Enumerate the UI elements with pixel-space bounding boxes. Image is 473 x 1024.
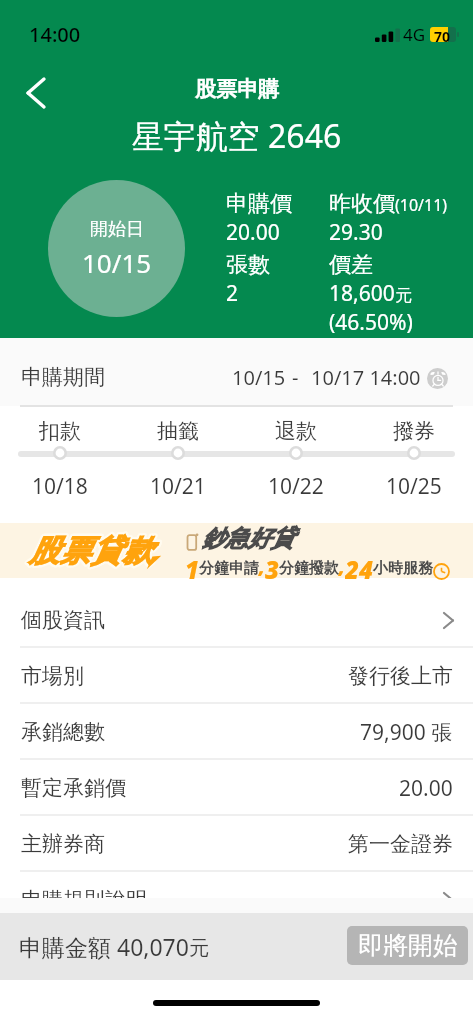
staticText: 20.00 [399, 774, 453, 803]
staticText: 79,900 張 [360, 718, 453, 747]
staticText: 股票貸款 [29, 532, 154, 570]
staticText: 10/17 14:00 [311, 364, 421, 391]
staticText: 張數 [226, 251, 270, 279]
staticText: 昨收價 [329, 190, 395, 218]
staticText: 小時服務 [373, 559, 433, 578]
button[interactable]: 市場別 [0, 648, 473, 704]
staticText: 申購規則說明 [21, 887, 147, 913]
staticText: 元 [395, 285, 412, 306]
staticText: 70 [434, 27, 451, 42]
staticText: 退款 [275, 418, 317, 444]
staticText: 18,600 [329, 279, 395, 308]
staticText: 發行後上市 [348, 663, 453, 689]
staticText: 鈔急好貸 [202, 524, 294, 553]
staticText: (10/11) [395, 194, 448, 216]
staticText: 14:00 [29, 21, 81, 48]
staticText: 2 [226, 279, 239, 308]
staticText: 市場別 [21, 663, 84, 689]
staticText: 29.30 [329, 218, 383, 247]
staticText: 24 [345, 553, 373, 579]
staticText: 10/15 [82, 245, 152, 280]
staticText: 承銷總數 [21, 719, 105, 745]
staticText: 申購價 [226, 190, 292, 218]
button[interactable]: Set reminder [427, 368, 448, 389]
staticText: 價差 [329, 251, 373, 279]
staticText: 10/18 [32, 472, 88, 501]
button[interactable]: 即將開始 [347, 926, 468, 965]
staticText: 股票申購 [195, 76, 279, 102]
staticText: 10/25 [386, 472, 442, 501]
staticText: 1 [185, 553, 199, 579]
button[interactable]: 股票貸款 [0, 523, 473, 578]
staticText: 10/22 [268, 472, 324, 501]
staticText: 申購金額 40,070 [19, 931, 189, 962]
staticText: 分鐘撥款 [279, 559, 339, 578]
button[interactable]: 申購規則說明 [0, 872, 473, 928]
staticText: 第一金證券 [348, 831, 453, 857]
staticText: 暫定承銷價 [21, 775, 126, 801]
button[interactable]: 暫定承銷價 [0, 760, 473, 816]
button[interactable]: 申購期間 [0, 338, 473, 406]
staticText: 星宇航空 2646 [0, 114, 473, 158]
staticText: , [339, 553, 345, 579]
staticText: 撥券 [393, 418, 435, 444]
button[interactable]: 主辦券商 [0, 816, 473, 872]
staticText: 20.00 [226, 218, 280, 247]
staticText: 個股資訊 [21, 607, 105, 633]
staticText: 開始日 [90, 218, 144, 241]
staticText: 3 [265, 553, 279, 579]
button[interactable]: 承銷總數 [0, 704, 473, 760]
staticText: 10/15 [232, 364, 286, 391]
staticText: 扣款 [39, 418, 81, 444]
button[interactable]: 個股資訊 [0, 592, 473, 648]
staticText: 10/21 [150, 472, 206, 501]
staticText: 申購期間 [21, 364, 105, 390]
staticText: , [259, 553, 265, 579]
staticText: 股票貸款 [29, 532, 154, 570]
staticText: 4G [403, 23, 426, 46]
staticText: - [292, 364, 299, 391]
button[interactable]: Back [14, 71, 58, 115]
staticText: (46.50%) [329, 308, 413, 337]
staticText: 抽籤 [157, 418, 199, 444]
staticText: 分鐘申請 [199, 559, 259, 578]
staticText: 即將開始 [358, 930, 458, 961]
staticText: 元 [189, 936, 209, 961]
staticText: 主辦券商 [21, 831, 105, 857]
